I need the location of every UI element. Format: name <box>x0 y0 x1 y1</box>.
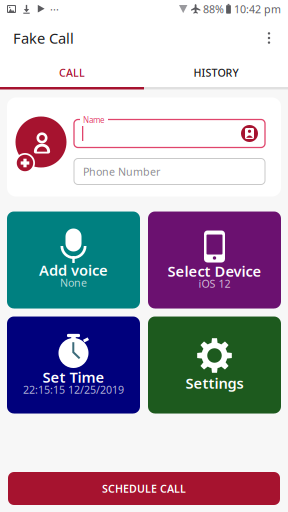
staticText: CALL <box>59 65 85 80</box>
staticText: Name <box>83 115 105 125</box>
staticText: SCHEDULE CALL <box>102 481 186 496</box>
button[interactable]: HISTORY <box>144 58 288 87</box>
staticText: Fake Call <box>13 28 74 48</box>
staticText: HISTORY <box>193 65 238 80</box>
staticText: None <box>60 275 87 290</box>
staticText: 22:15:15 12/25/2019 <box>23 382 124 397</box>
staticText: Phone Number <box>83 164 160 179</box>
staticText: 10:42 pm <box>234 2 281 16</box>
staticText: iOS 12 <box>198 276 230 291</box>
button[interactable]: Settings <box>148 316 281 413</box>
button[interactable]: More options <box>255 19 283 57</box>
button[interactable]: Select Device <box>148 211 281 308</box>
button[interactable]: SCHEDULE CALL <box>8 472 280 505</box>
staticText: Add voice <box>39 260 108 280</box>
button[interactable]: Add voice <box>7 211 140 308</box>
button[interactable]: CALL <box>0 58 144 87</box>
staticText: 88% <box>203 2 224 16</box>
button[interactable]: Set Time <box>7 316 140 413</box>
staticText: Select Device <box>167 261 261 281</box>
staticText: Settings <box>185 373 243 393</box>
staticText: ··· <box>50 2 59 16</box>
staticText: Set Time <box>42 367 104 387</box>
